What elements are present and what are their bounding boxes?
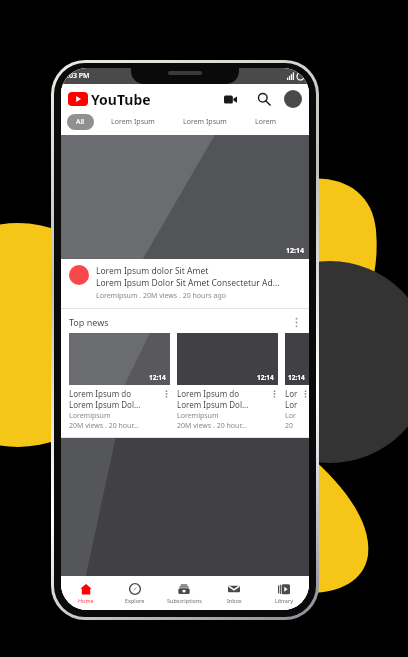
button[interactable]: Lorem Ipsum bbox=[100, 114, 166, 130]
staticText: 12:14 bbox=[149, 373, 166, 382]
button[interactable]: Subscriptions bbox=[159, 576, 209, 610]
staticText: Lorem Ipsum Dolor Sit Amet Consectetur A… bbox=[96, 277, 280, 289]
staticText: 12:14 bbox=[257, 373, 274, 382]
button[interactable]: More bbox=[301, 390, 309, 398]
button[interactable]: Explore bbox=[110, 576, 159, 610]
staticText: Explore bbox=[125, 597, 145, 604]
button[interactable]: More options bbox=[289, 315, 303, 329]
button[interactable]: 12:14 bbox=[285, 333, 309, 431]
button[interactable] bbox=[61, 438, 309, 576]
button[interactable]: 12:14 bbox=[177, 333, 278, 431]
staticText: Lorem Ipsum bbox=[183, 117, 227, 127]
staticText: Lorem Ipsum do bbox=[177, 388, 239, 399]
staticText: Subscriptions bbox=[167, 597, 202, 604]
button[interactable]: Inbox bbox=[209, 576, 259, 610]
staticText: Lorem Ipsum do bbox=[69, 388, 131, 399]
staticText: Library bbox=[275, 597, 294, 604]
staticText: Loremipsum bbox=[69, 411, 111, 421]
staticText: Lorem Ipsum bbox=[111, 117, 155, 127]
button[interactable]: 12:14 bbox=[69, 333, 170, 431]
staticText: Lorem Ipsum dolor Sit Amet bbox=[96, 265, 209, 277]
button[interactable]: 12:14 bbox=[61, 135, 309, 259]
staticText: Loremipsum bbox=[285, 411, 299, 421]
staticText: Loremipsum bbox=[177, 411, 219, 421]
staticText: 12:14 bbox=[288, 373, 305, 382]
button[interactable]: Library bbox=[259, 576, 309, 610]
staticText: Home bbox=[78, 597, 94, 604]
button[interactable]: Account bbox=[284, 90, 302, 108]
staticText: Top news bbox=[69, 316, 109, 328]
button[interactable]: Lorem Ipsum dolor Sit Amet bbox=[61, 259, 309, 308]
staticText: YouTube bbox=[91, 90, 151, 109]
button[interactable]: More bbox=[270, 390, 278, 398]
staticText: All bbox=[76, 117, 85, 127]
staticText: Inbox bbox=[227, 597, 242, 604]
staticText: 20M views . 20 hour... bbox=[177, 421, 247, 431]
staticText: Loremipsum . 20M views . 20 hours ago bbox=[96, 291, 226, 301]
button[interactable]: Search bbox=[252, 87, 276, 111]
button[interactable]: Home bbox=[61, 576, 110, 610]
staticText: 20M views . 20 hour... bbox=[285, 421, 299, 431]
staticText: 20M views . 20 hour... bbox=[69, 421, 139, 431]
staticText: Lorem Ipsum Dol... bbox=[285, 399, 299, 410]
button[interactable]: More bbox=[162, 390, 170, 398]
staticText: Lorem Ipsum do bbox=[285, 388, 299, 399]
button[interactable]: Lorem Ipsum bbox=[172, 114, 238, 130]
button[interactable]: Create video bbox=[218, 87, 242, 111]
staticText: 12:14 bbox=[286, 246, 304, 256]
staticText: Lorem Ipsum Dol... bbox=[69, 399, 141, 410]
button[interactable]: All bbox=[67, 114, 94, 130]
staticText: Lorem Ipsum Dol... bbox=[177, 399, 249, 410]
staticText: Lorem Ipsum bbox=[255, 117, 298, 127]
button[interactable]: Lorem Ipsum bbox=[244, 114, 309, 130]
staticText: .03 PM bbox=[67, 71, 90, 81]
